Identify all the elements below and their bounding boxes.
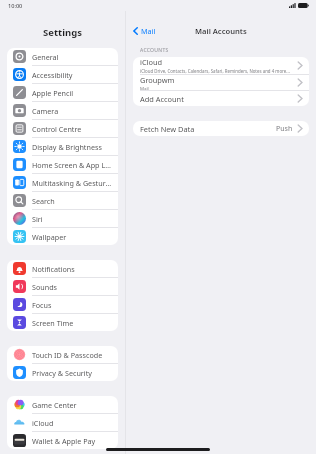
staticText: Mail [141,26,156,36]
staticText: General [32,52,59,62]
button[interactable]: Home Screen & App Library [7,156,118,174]
button[interactable]: Game Center [7,396,118,414]
staticText: Mail Accounts [195,26,247,36]
staticText: Apple Pencil [32,88,74,98]
button[interactable]: Sounds [7,278,118,296]
staticText: Settings [43,26,82,39]
button[interactable]: Add Account [133,91,309,106]
button[interactable]: Touch ID & Passcode [7,346,118,364]
staticText: Search [32,196,55,206]
button[interactable]: Control Centre [7,120,118,138]
staticText: Fetch New Data [140,124,195,134]
staticText: Home Screen & App Library [32,160,112,170]
button[interactable]: Fetch New Data [133,121,309,136]
staticText: Wallet & Apple Pay [32,436,96,446]
staticText: 10:00 [8,2,23,10]
staticText: Control Centre [32,124,82,134]
staticText: Touch ID & Passcode [32,350,103,360]
button[interactable]: General [7,48,118,66]
button[interactable]: Search [7,192,118,210]
staticText: Display & Brightness [32,142,102,152]
staticText: Multitasking & Gestures [32,178,112,188]
staticText: Game Center [32,400,77,410]
button[interactable]: Apple Pencil [7,84,118,102]
button[interactable]: Camera [7,102,118,120]
staticText: Wallpaper [32,232,67,242]
button[interactable]: Accessibility [7,66,118,84]
staticText: Groupwm [140,75,175,85]
button[interactable]: Display & Brightness [7,138,118,156]
button[interactable]: Screen Time [7,314,118,331]
button[interactable]: Focus [7,296,118,314]
button[interactable]: Wallpaper [7,228,118,245]
staticText: iCloud [140,57,163,67]
staticText: Notifications [32,264,75,274]
button[interactable]: iCloud [7,414,118,432]
button[interactable]: Multitasking & Gestures [7,174,118,192]
button[interactable]: Groupwm [133,75,309,91]
staticText: Accessibility [32,70,73,80]
button[interactable]: Wallet & Apple Pay [7,432,118,449]
button[interactable]: Privacy & Security [7,364,118,381]
staticText: Camera [32,106,59,116]
staticText: Privacy & Security [32,368,92,378]
staticText: iCloud [32,418,54,428]
button[interactable]: Mail [133,26,156,36]
staticText: Mail [140,86,149,90]
staticText: Sounds [32,282,58,292]
button[interactable]: Siri [7,210,118,228]
button[interactable]: Notifications [7,260,118,278]
staticText: ACCOUNTS [140,47,169,54]
staticText: Siri [32,214,43,224]
staticText: Focus [32,300,52,310]
button[interactable]: iCloud [133,57,309,75]
staticText: iCloud Drive, Contacts, Calendars, Safar… [140,68,290,74]
staticText: Add Account [140,94,184,104]
staticText: Push [276,124,293,134]
staticText: Screen Time [32,318,74,328]
